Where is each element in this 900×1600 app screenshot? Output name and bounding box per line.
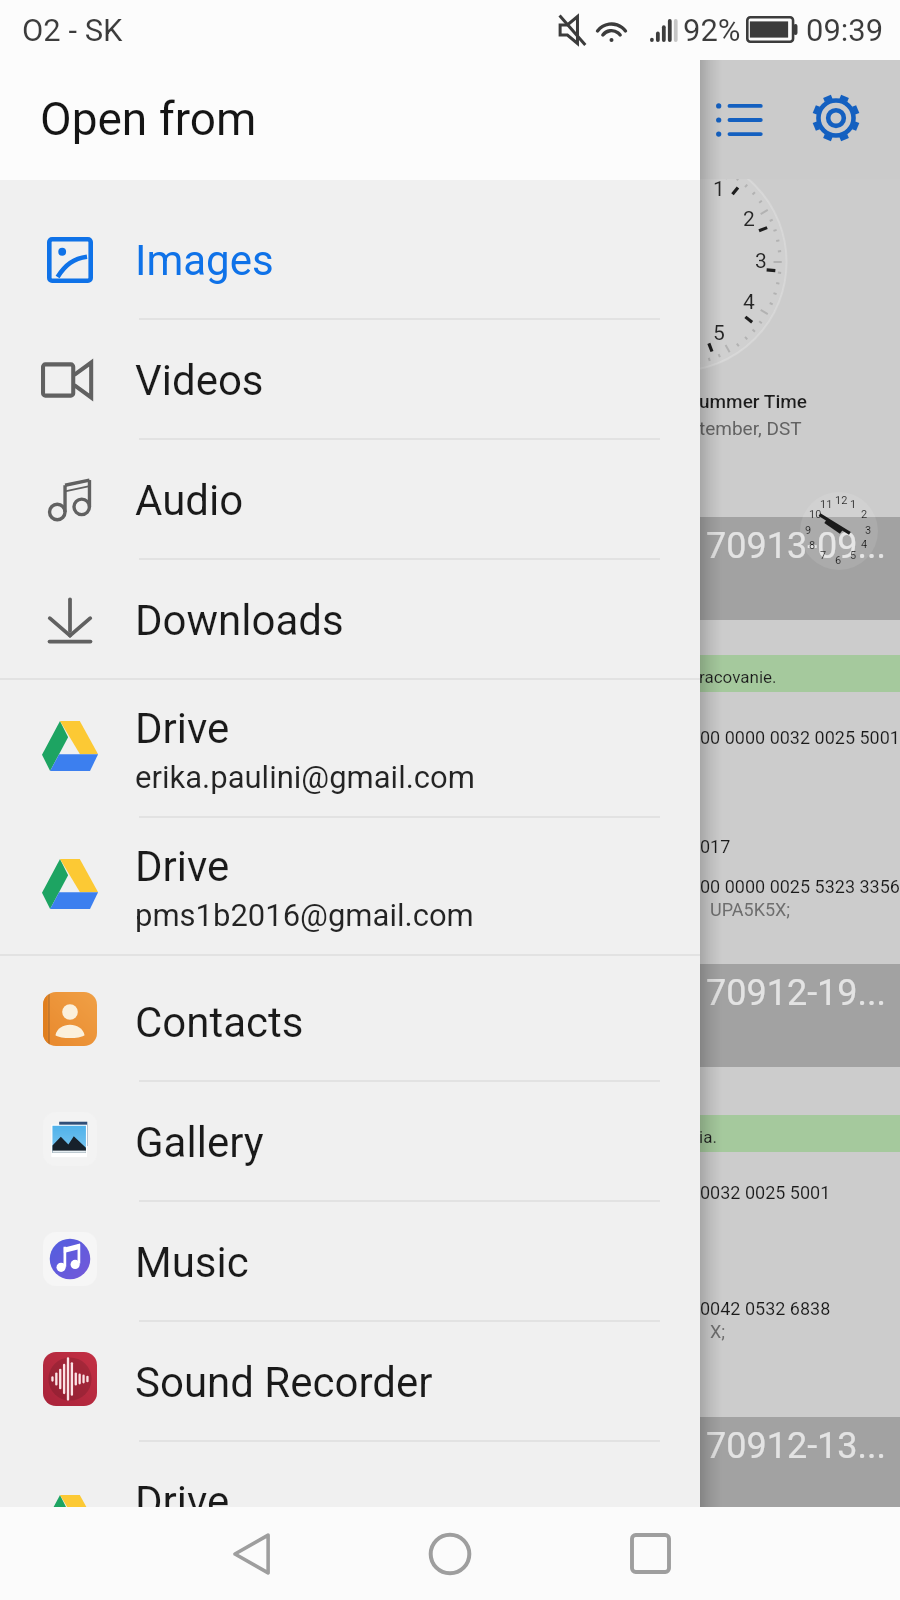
staticText: 3	[755, 249, 767, 274]
staticText: 1	[850, 498, 857, 511]
button[interactable]: Audio	[0, 440, 700, 560]
button[interactable]: Gallery	[0, 1082, 700, 1202]
staticText: tember, DST	[699, 417, 802, 439]
staticText: 2	[861, 508, 868, 521]
staticText: Videos	[135, 356, 264, 405]
staticText: Images	[135, 236, 274, 285]
staticText: Gallery	[135, 1118, 264, 1167]
staticText: Contacts	[135, 998, 304, 1047]
staticText: X;	[710, 1321, 726, 1342]
staticText: Drive	[135, 842, 230, 891]
staticText: Music	[135, 1238, 249, 1287]
staticText: 8	[809, 539, 816, 552]
button[interactable]: Sound Recorder	[0, 1322, 700, 1442]
staticText: erika.paulini@gmail.com	[135, 759, 475, 795]
button[interactable]: Images	[0, 200, 700, 320]
button[interactable]: Drive	[0, 818, 700, 956]
button[interactable]: List view	[688, 70, 788, 170]
button[interactable]: Home	[390, 1507, 510, 1600]
staticText: 0042 0532 6838	[700, 1298, 831, 1319]
staticText: 9	[805, 524, 812, 537]
staticText: 1	[713, 179, 725, 202]
staticText: 4	[743, 290, 755, 315]
staticText: 0032 0025 5001	[700, 1182, 831, 1203]
staticText: 5	[713, 321, 725, 346]
staticText: 10	[809, 508, 822, 521]
staticText: 09:39	[806, 12, 884, 48]
staticText: user@gmail.com	[135, 1532, 369, 1568]
button[interactable]: Recent apps	[590, 1507, 710, 1600]
staticText: 92%	[683, 12, 741, 48]
button[interactable]: Drive	[0, 1442, 700, 1579]
staticText: 70913-09...	[706, 525, 887, 567]
staticText: 12	[835, 494, 848, 507]
staticText: O2 - SK	[22, 12, 123, 48]
staticText: Audio	[135, 476, 244, 525]
staticText: ummer Time	[699, 390, 807, 412]
button[interactable]: Contacts	[0, 962, 700, 1082]
staticText: 5	[850, 549, 857, 562]
staticText: Open from	[40, 92, 257, 146]
staticText: 00 0000 0032 0025 5001	[700, 727, 900, 748]
button[interactable]: Back	[193, 1507, 313, 1600]
staticText: ia.	[699, 1127, 717, 1147]
staticText: 4	[861, 538, 868, 551]
button[interactable]: Drive	[0, 680, 700, 818]
staticText: Downloads	[135, 596, 344, 645]
staticText: 017	[700, 836, 731, 857]
button[interactable]: Settings	[786, 68, 886, 168]
staticText: 2	[743, 207, 755, 232]
staticText: Sound Recorder	[135, 1358, 433, 1407]
button[interactable]: Music	[0, 1202, 700, 1322]
staticText: racovanie.	[699, 667, 777, 687]
staticText: 7	[820, 549, 827, 562]
staticText: pms1b2016@gmail.com	[135, 897, 474, 933]
staticText: 3	[865, 524, 872, 537]
staticText: 6	[835, 554, 842, 567]
staticText: 00 0000 0025 5323 3356	[700, 876, 900, 897]
staticText: UPA5K5X;	[710, 899, 791, 920]
button[interactable]: Downloads	[0, 560, 700, 680]
staticText: Drive	[135, 704, 230, 753]
staticText: 70912-13...	[706, 1425, 887, 1467]
button[interactable]: Videos	[0, 320, 700, 440]
staticText: 11	[820, 498, 833, 511]
staticText: 70912-19...	[706, 972, 887, 1014]
staticText: Drive	[135, 1477, 230, 1526]
